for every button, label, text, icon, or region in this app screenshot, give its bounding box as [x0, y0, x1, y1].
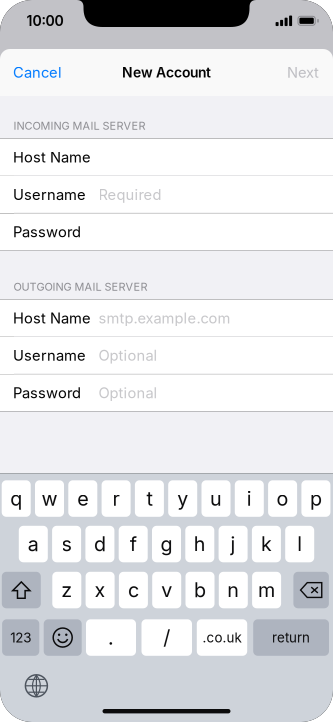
staticText: q	[10, 487, 22, 510]
button[interactable]: Next keyboard	[17, 667, 55, 705]
button[interactable]: b	[185, 572, 214, 608]
staticText: OUTGOING MAIL SERVER	[13, 280, 147, 293]
button[interactable]: l	[285, 526, 314, 562]
staticText: k	[261, 532, 272, 556]
button[interactable]: q	[2, 480, 31, 517]
button[interactable]: Username	[0, 337, 333, 374]
button[interactable]: i	[235, 480, 264, 517]
button[interactable]: Emoji	[44, 619, 82, 656]
button[interactable]: .co.uk	[197, 619, 247, 656]
button[interactable]: h	[185, 526, 214, 562]
staticText: b	[194, 578, 206, 602]
button[interactable]: u	[201, 480, 230, 517]
button[interactable]: Delete	[293, 572, 329, 608]
button[interactable]: x	[86, 572, 115, 608]
staticText: p	[310, 487, 322, 510]
staticText: w	[41, 487, 57, 510]
button[interactable]: o	[268, 480, 297, 517]
button[interactable]: p	[301, 480, 330, 517]
staticText: return	[272, 629, 310, 646]
staticText: .	[108, 626, 114, 649]
button[interactable]: Password	[0, 374, 333, 412]
staticText: Host Name	[13, 309, 91, 327]
button[interactable]: f	[119, 526, 148, 562]
button[interactable]: y	[168, 480, 197, 517]
staticText: smtp.example.com	[98, 309, 230, 327]
staticText: r	[113, 487, 120, 510]
staticText: j	[231, 532, 236, 556]
button[interactable]: .	[86, 619, 136, 656]
button[interactable]: n	[219, 572, 248, 608]
button[interactable]: 123	[2, 619, 39, 656]
button[interactable]: /	[141, 619, 192, 656]
staticText: Username	[13, 186, 86, 203]
button[interactable]: j	[219, 526, 248, 562]
staticText: Optional	[98, 384, 157, 402]
button[interactable]: k	[252, 526, 281, 562]
button[interactable]: Host Name	[0, 299, 333, 337]
staticText: Next	[287, 64, 319, 81]
button[interactable]: c	[119, 572, 148, 608]
button[interactable]: Host Name	[0, 138, 333, 176]
button[interactable]: g	[152, 526, 181, 562]
staticText: INCOMING MAIL SERVER	[13, 119, 145, 132]
staticText: Password	[13, 223, 81, 241]
staticText: .co.uk	[202, 629, 241, 646]
staticText: h	[194, 532, 206, 556]
staticText: n	[227, 578, 239, 602]
button[interactable]: e	[68, 480, 97, 517]
staticText: 10:00	[26, 12, 63, 29]
staticText: v	[161, 578, 172, 602]
button[interactable]: Next	[273, 49, 333, 96]
staticText: Password	[13, 384, 81, 402]
staticText: Optional	[98, 347, 157, 364]
staticText: Required	[98, 186, 161, 203]
button[interactable]: v	[152, 572, 181, 608]
staticText: c	[128, 578, 139, 602]
staticText: /	[163, 626, 170, 649]
staticText: f	[130, 532, 137, 556]
staticText: Host Name	[13, 148, 91, 166]
staticText: New Account	[122, 64, 211, 81]
staticText: i	[247, 487, 252, 510]
button[interactable]: s	[52, 526, 81, 562]
staticText: o	[277, 487, 289, 510]
staticText: g	[160, 532, 172, 556]
button[interactable]: Shift	[2, 572, 41, 608]
staticText: y	[177, 487, 188, 510]
button[interactable]: Password	[0, 213, 333, 251]
staticText: d	[94, 532, 106, 556]
button[interactable]: t	[135, 480, 164, 517]
staticText: e	[77, 487, 88, 510]
staticText: m	[258, 578, 275, 602]
button[interactable]: d	[85, 526, 114, 562]
staticText: Cancel	[13, 64, 62, 81]
button[interactable]: Username	[0, 176, 333, 213]
button[interactable]: a	[19, 526, 48, 562]
staticText: u	[210, 487, 222, 510]
staticText: Username	[13, 347, 86, 364]
button[interactable]: m	[252, 572, 281, 608]
staticText: l	[297, 532, 302, 556]
button[interactable]: return	[253, 619, 329, 656]
staticText: t	[146, 487, 152, 510]
staticText: s	[62, 532, 72, 556]
staticText: 123	[10, 629, 31, 646]
button[interactable]: w	[35, 480, 64, 517]
button[interactable]: Cancel	[0, 49, 76, 96]
button[interactable]: r	[102, 480, 131, 517]
staticText: a	[28, 532, 39, 556]
staticText: x	[95, 578, 106, 602]
button[interactable]: z	[52, 572, 81, 608]
staticText: z	[61, 578, 72, 602]
